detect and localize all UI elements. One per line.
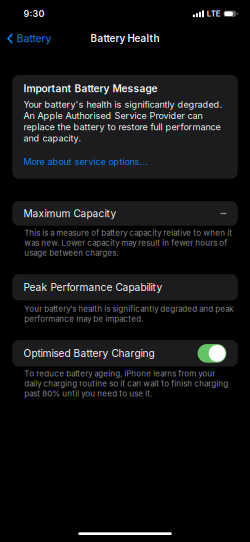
staticText: LTE: [207, 9, 221, 18]
staticText: Optimised Battery Charging: [24, 347, 155, 359]
button[interactable]: Optimised Battery Charging: [12, 340, 238, 367]
staticText: To reduce battery ageing, iPhone learns …: [24, 369, 228, 398]
button[interactable]: More about service options...: [24, 144, 226, 167]
button[interactable]: Maximum Capacity: [12, 201, 238, 226]
staticText: More about service options...: [24, 156, 149, 167]
staticText: This is a measure of battery capacity re…: [24, 228, 232, 258]
staticText: Peak Performance Capability: [24, 281, 163, 293]
staticText: 9:30: [23, 8, 44, 19]
staticText: Your battery's health is significantly d…: [24, 99, 223, 144]
staticText: Important Battery Message: [24, 82, 158, 95]
staticText: Maximum Capacity: [24, 207, 117, 220]
staticText: Your battery's health is significantly d…: [24, 304, 233, 324]
button[interactable]: Battery: [0, 28, 59, 49]
staticText: Battery Health: [90, 32, 159, 44]
staticText: Battery: [16, 32, 51, 45]
